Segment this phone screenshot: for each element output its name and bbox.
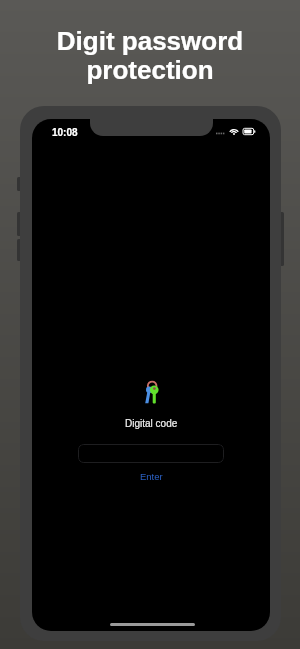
staticText: Digital code	[125, 418, 178, 429]
button[interactable]	[78, 444, 224, 463]
staticText: Enter	[140, 471, 163, 482]
button[interactable]: Enter	[130, 469, 173, 484]
staticText: 10:08	[52, 127, 78, 138]
other: Signal, Wi-Fi and battery status	[216, 122, 262, 138]
staticText: Digit password protection	[0, 26, 300, 84]
other: Keys	[140, 375, 168, 403]
